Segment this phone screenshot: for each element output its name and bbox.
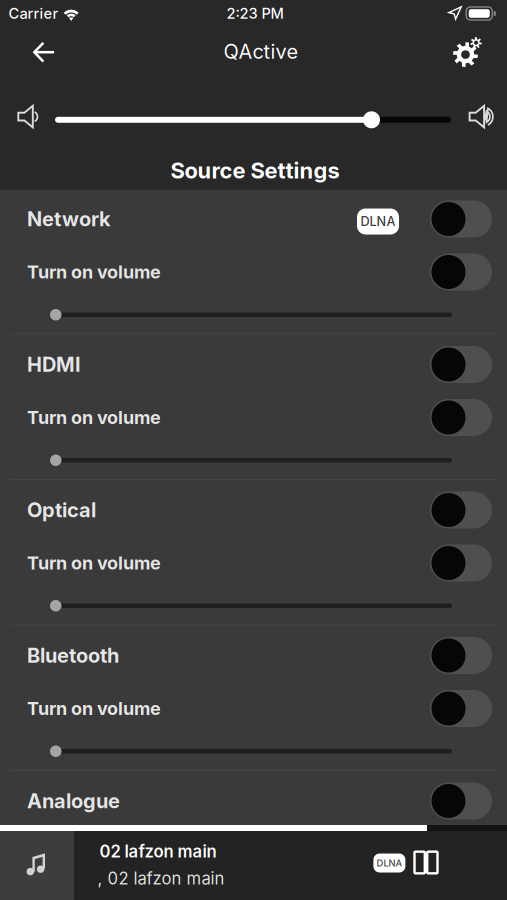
staticText: Turn on volume (27, 552, 161, 574)
button[interactable]: Turn on volume (0, 830, 507, 878)
button[interactable]: 02 lafzon main (0, 831, 507, 900)
staticText: Analogue (27, 789, 120, 813)
staticText: DLNA (360, 214, 395, 229)
button[interactable]: Turn on volume (0, 248, 507, 296)
staticText: DLNA (376, 857, 402, 869)
button[interactable]: Bluetooth (0, 626, 507, 684)
button[interactable]: Analogue (0, 772, 507, 830)
button[interactable]: Turn on volume (0, 539, 507, 587)
staticText: Turn on volume (27, 407, 161, 428)
button[interactable]: Network (0, 190, 507, 248)
button[interactable]: Turn on volume (0, 684, 507, 732)
button[interactable]: Settings (443, 27, 493, 77)
button[interactable]: HDMI (0, 335, 507, 393)
staticText: 02 lafzon main (99, 841, 216, 862)
staticText: Source Settings (170, 157, 339, 184)
staticText: , 02 lafzon main (97, 868, 224, 889)
staticText: Turn on volume (27, 843, 161, 865)
staticText: Optical (27, 498, 96, 522)
button[interactable]: Turn on volume (0, 393, 507, 441)
button[interactable]: Back (19, 27, 69, 77)
staticText: HDMI (27, 352, 81, 377)
staticText: Turn on volume (27, 698, 161, 719)
staticText: Carrier (8, 4, 58, 22)
staticText: Turn on volume (27, 261, 161, 283)
staticText: 2:23 PM (226, 4, 283, 22)
staticText: QActive (223, 39, 298, 64)
button[interactable]: Optical (0, 481, 507, 539)
staticText: Bluetooth (27, 643, 119, 668)
staticText: Network (27, 207, 111, 231)
